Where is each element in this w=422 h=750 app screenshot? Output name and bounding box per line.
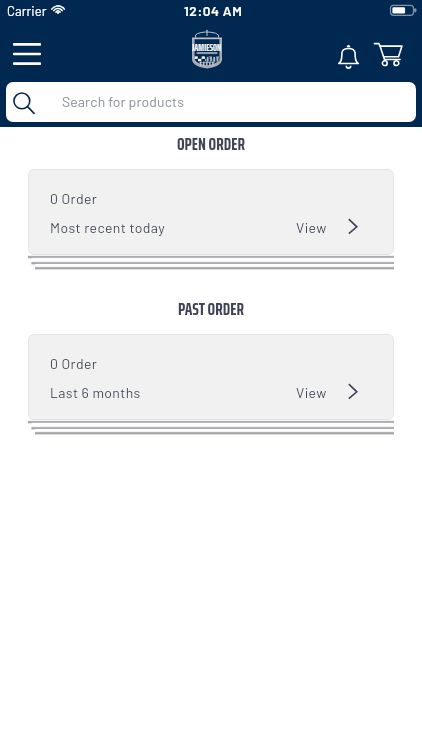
button[interactable]: Menu (1, 31, 53, 77)
staticText: JAMIESON (192, 40, 222, 55)
staticText: PAST ORDER (0, 295, 422, 323)
staticText: Last 6 months (50, 384, 141, 401)
staticText: 0 Order (50, 355, 98, 372)
button[interactable]: Search for products (6, 82, 416, 122)
staticText: 12:04 AM (184, 2, 243, 18)
button[interactable]: 0 Order (28, 334, 394, 420)
button[interactable]: 0 Order (28, 169, 394, 255)
staticText: View (296, 219, 327, 236)
staticText: Carrier (7, 3, 47, 19)
staticText: Search for products (62, 93, 185, 110)
staticText: 0 Order (50, 190, 98, 207)
staticText: Most recent today (50, 219, 166, 236)
staticText: View (296, 384, 327, 401)
staticText: OPEN ORDER (0, 130, 422, 158)
button[interactable]: Notifications (328, 33, 369, 74)
button[interactable]: Shopping cart (367, 33, 408, 74)
button[interactable]: Jamieson Fence Supply (192, 28, 222, 70)
